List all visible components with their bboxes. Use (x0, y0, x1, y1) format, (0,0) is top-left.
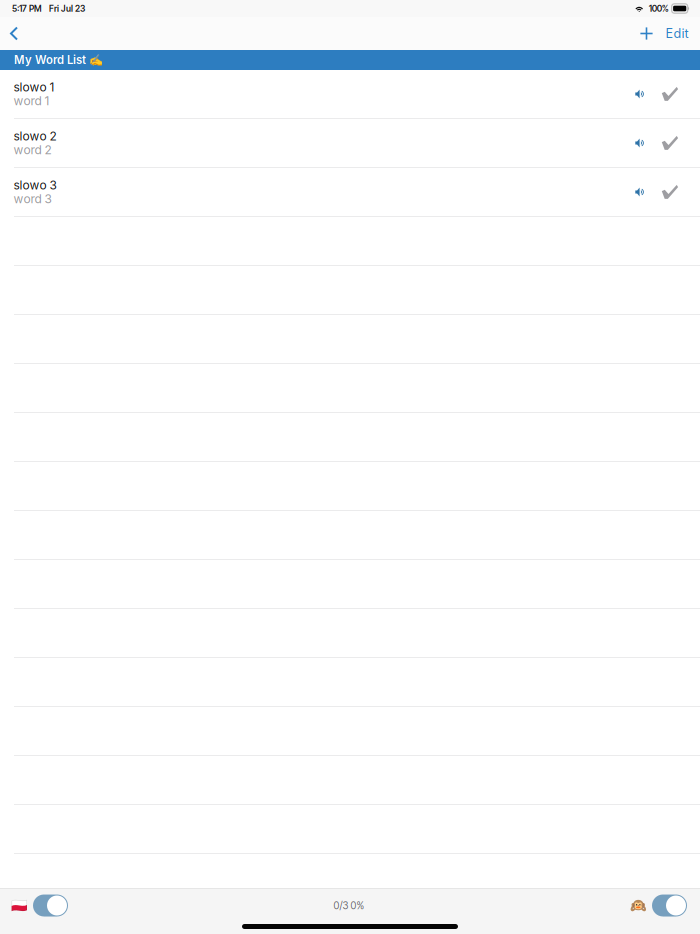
staticText: 5:17 PM (12, 3, 42, 14)
button[interactable]: Hide translations (630, 889, 700, 922)
staticText: 🇵🇱 (11, 898, 28, 913)
staticText: word 2 (13, 142, 51, 157)
button[interactable]: Edit (657, 18, 697, 48)
button[interactable]: Back (1, 18, 27, 48)
staticText: My Word List ✍️ (14, 53, 103, 67)
staticText: Edit (665, 26, 688, 41)
staticText: slowo 1 (13, 80, 54, 94)
button[interactable]: Mark slowo 2 as learned (648, 119, 692, 167)
button[interactable]: Play slowo 1 (632, 70, 648, 118)
staticText: 0/3 0% (333, 899, 364, 912)
staticText: slowo 2 (13, 129, 56, 143)
button[interactable]: Mark slowo 1 as learned (648, 70, 692, 118)
button[interactable]: Polish audio (0, 889, 68, 922)
staticText: Fri Jul 23 (49, 3, 85, 14)
staticText: word 3 (13, 191, 51, 206)
button[interactable]: Add word (636, 18, 657, 48)
staticText: word 1 (13, 93, 49, 108)
button[interactable]: Mark slowo 3 as learned (648, 168, 692, 216)
staticText: slowo 3 (13, 178, 56, 192)
staticText: 🙉 (630, 898, 647, 913)
button[interactable]: Play slowo 3 (632, 168, 648, 216)
button[interactable]: Play slowo 2 (632, 119, 648, 167)
staticText: 100% (649, 3, 669, 14)
